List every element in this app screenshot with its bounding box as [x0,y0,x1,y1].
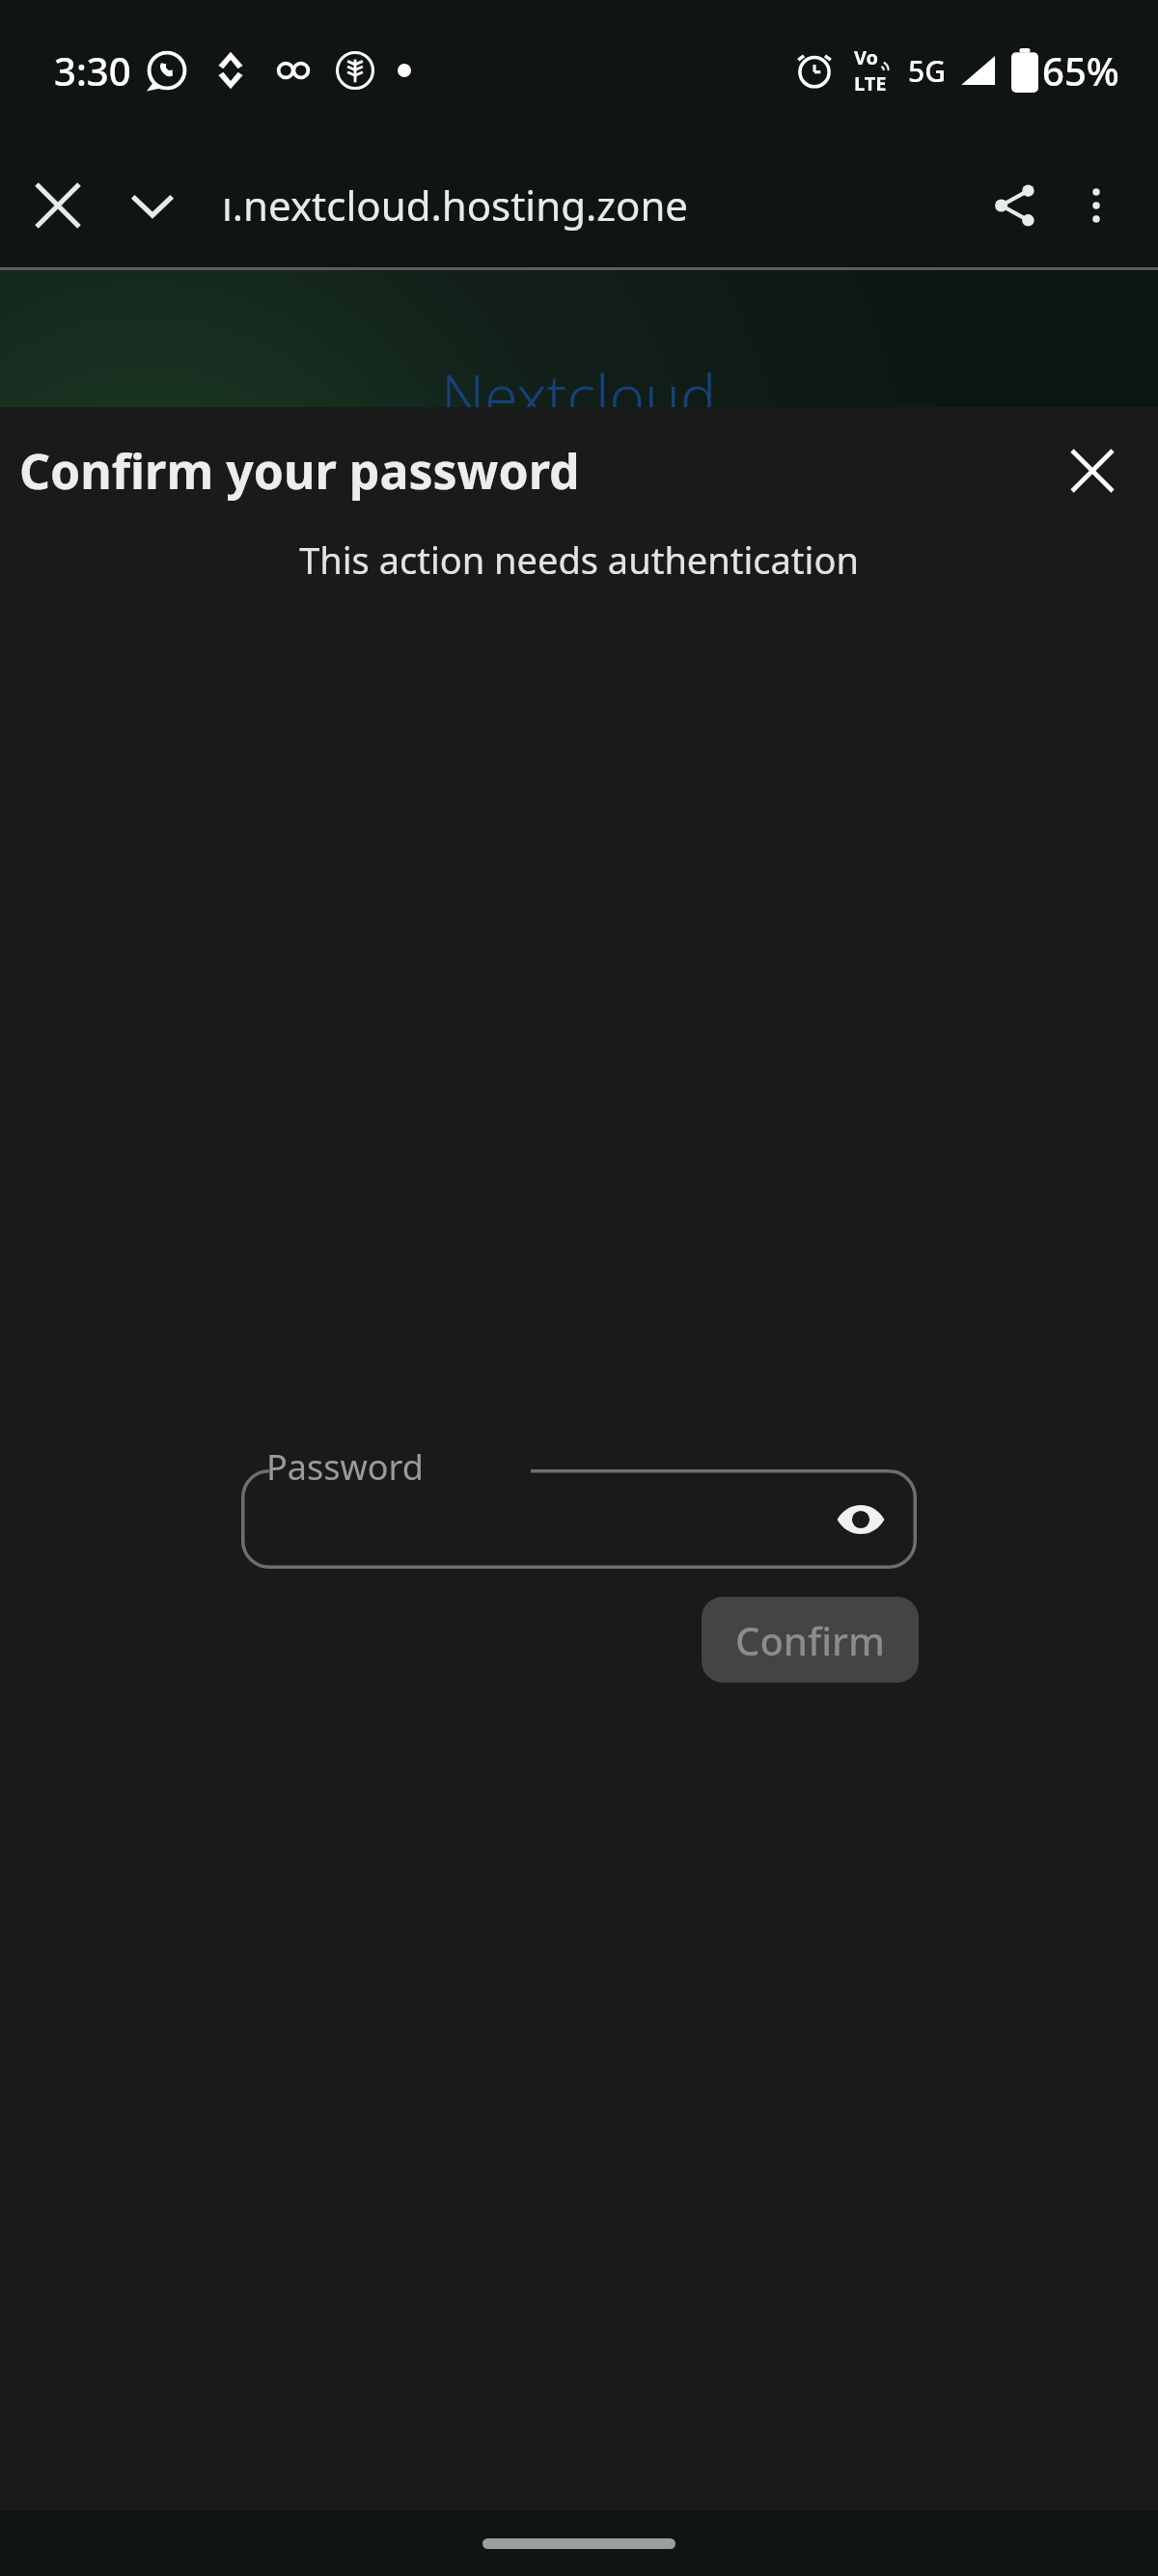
button[interactable]: Show password [241,1469,917,1569]
button[interactable]: Confirm [702,1597,919,1683]
button[interactable]: More options [1056,165,1137,246]
staticText: 3:30 [54,44,131,96]
staticText: Confirm [735,1614,885,1666]
staticText: ı.nextcloud.hosting.zone [222,178,689,233]
staticText: LTE [854,70,887,96]
staticText: Password [266,1443,424,1491]
staticText: Confirm your password [19,438,580,504]
staticText: This action needs authentication [0,534,1158,585]
button[interactable]: Close dialog [1052,430,1133,511]
staticText: 5G [908,51,946,91]
button[interactable]: Collapse [112,165,193,246]
button[interactable]: Close custom tab [17,165,98,246]
staticText: Vo [854,44,879,70]
staticText: Nextcloud [441,355,717,436]
button[interactable]: Show password [824,1483,897,1556]
button[interactable]: Share [975,165,1056,246]
staticText: 65% [1042,44,1119,96]
